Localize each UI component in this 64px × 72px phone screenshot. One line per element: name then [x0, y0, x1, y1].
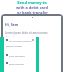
staticText: Bank transfer — [9, 62, 25, 65]
staticText: My account balance — [9, 39, 32, 42]
button[interactable]: Card payment — [4, 51, 36, 59]
staticText: Recent activity — [6, 44, 23, 47]
staticText: or bank transfer — [17, 10, 48, 15]
staticText: with a debit card — [16, 5, 48, 10]
staticText: Hi, Sam — [5, 22, 19, 27]
staticText: Lorem ipsum dolor sit amet consec — [5, 31, 48, 35]
staticText: Card payment — [9, 54, 25, 57]
staticText: Send money to — [17, 0, 47, 5]
button[interactable]: Menu — [4, 38, 36, 42]
staticText: elit sed — [5, 36, 14, 40]
button[interactable]: Bank transfer — [4, 59, 36, 67]
